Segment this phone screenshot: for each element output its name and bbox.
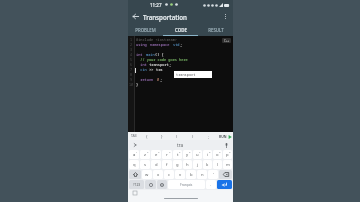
button[interactable]: 9 xyxy=(213,150,222,159)
button[interactable]: d xyxy=(151,160,161,169)
button[interactable]: Insert ; xyxy=(201,132,217,140)
staticText: RUN xyxy=(219,134,227,139)
staticText: g xyxy=(176,162,179,168)
staticText: 1 xyxy=(130,37,133,42)
staticText: RESULT xyxy=(208,27,224,33)
button[interactable]: ' xyxy=(208,170,218,179)
button[interactable]: n xyxy=(197,170,207,179)
staticText: 5 xyxy=(130,57,133,62)
staticText: TAB xyxy=(131,134,137,138)
button[interactable]: l xyxy=(213,160,222,169)
staticText: ) xyxy=(192,134,194,139)
button[interactable]: ?123 xyxy=(129,180,144,189)
staticText: i xyxy=(207,152,209,158)
staticText: 4 xyxy=(169,150,171,153)
staticText: 9 xyxy=(219,150,221,153)
staticText: u xyxy=(196,152,199,158)
staticText: return xyxy=(136,77,154,82)
button[interactable]: Emoji xyxy=(145,180,156,189)
button[interactable]: Insert ) xyxy=(185,132,201,140)
button[interactable]: 0 xyxy=(223,150,232,159)
staticText: a xyxy=(133,152,136,158)
button[interactable]: Insert } xyxy=(154,132,169,140)
staticText: int xyxy=(136,52,143,57)
button[interactable]: TAB xyxy=(128,132,139,140)
button[interactable]: Français xyxy=(168,180,205,189)
button[interactable]: j xyxy=(193,160,202,169)
button[interactable]: w xyxy=(142,170,152,179)
button[interactable]: 4 xyxy=(162,150,172,159)
button[interactable]: Language xyxy=(157,180,167,189)
staticText: // your code goes here xyxy=(136,57,188,62)
button[interactable]: Back xyxy=(128,9,143,24)
button[interactable]: Enter xyxy=(217,180,232,189)
staticText: ?123 xyxy=(133,182,141,187)
button[interactable]: Voice input xyxy=(223,142,229,148)
staticText: 5 xyxy=(179,150,181,153)
button[interactable]: Shift xyxy=(129,170,141,179)
staticText: ; xyxy=(160,77,163,82)
button[interactable]: Expand toolbar xyxy=(132,142,138,148)
button[interactable]: q xyxy=(129,160,139,169)
button[interactable]: Insert ( xyxy=(169,132,185,140)
staticText: main xyxy=(146,52,155,57)
button[interactable]: More options xyxy=(218,9,233,24)
staticText: { xyxy=(146,134,148,139)
staticText: d xyxy=(155,162,158,168)
staticText: j xyxy=(197,162,199,168)
button[interactable]: RUN xyxy=(217,132,233,140)
staticText: 0 xyxy=(229,150,231,153)
button[interactable]: 1 xyxy=(129,150,139,159)
staticText: cin xyxy=(136,67,147,72)
button[interactable]: C++ xyxy=(222,38,231,43)
button[interactable]: CODE xyxy=(163,24,198,35)
button[interactable]: 5 xyxy=(173,150,182,159)
button[interactable]: b xyxy=(186,170,196,179)
staticText: >> xyxy=(147,67,156,72)
staticText: 4 xyxy=(130,52,133,57)
button[interactable]: h xyxy=(183,160,192,169)
staticText: q xyxy=(133,162,136,168)
staticText: namespace xyxy=(150,42,170,47)
button[interactable]: 3 xyxy=(151,150,161,159)
staticText: s xyxy=(144,162,147,168)
staticText: ; xyxy=(169,62,172,67)
button[interactable]: m xyxy=(223,160,232,169)
button[interactable]: PROBLEM xyxy=(128,24,163,35)
staticText: x xyxy=(157,172,160,178)
button[interactable]: f xyxy=(162,160,172,169)
button[interactable]: k xyxy=(203,160,212,169)
button[interactable]: c xyxy=(164,170,174,179)
staticText: PROBLEM xyxy=(135,27,156,33)
button[interactable]: 6 xyxy=(183,150,192,159)
button[interactable]: 8 xyxy=(203,150,212,159)
staticText: y xyxy=(186,152,189,158)
staticText: ; xyxy=(208,134,210,139)
button[interactable]: s xyxy=(140,160,150,169)
staticText: n xyxy=(201,172,204,178)
staticText: 7 xyxy=(199,150,201,153)
staticText: . xyxy=(210,182,212,187)
staticText: Transportation xyxy=(143,13,218,21)
button[interactable]: g xyxy=(173,160,182,169)
staticText: #include <iostream> xyxy=(136,37,177,42)
staticText: v xyxy=(179,172,182,178)
button[interactable]: Backspace xyxy=(219,170,232,179)
button[interactable]: RESULT xyxy=(198,24,233,35)
button[interactable]: 7 xyxy=(193,150,202,159)
staticText: c xyxy=(168,172,171,178)
button[interactable]: Period xyxy=(206,180,216,189)
button[interactable]: Insert { xyxy=(139,132,154,140)
staticText: t xyxy=(177,152,179,158)
button[interactable]: transport xyxy=(174,71,212,78)
button[interactable]: v xyxy=(175,170,185,179)
button[interactable]: x xyxy=(153,170,163,179)
staticText: p xyxy=(226,152,229,158)
staticText: ( xyxy=(176,134,178,139)
button[interactable]: 2 xyxy=(140,150,150,159)
